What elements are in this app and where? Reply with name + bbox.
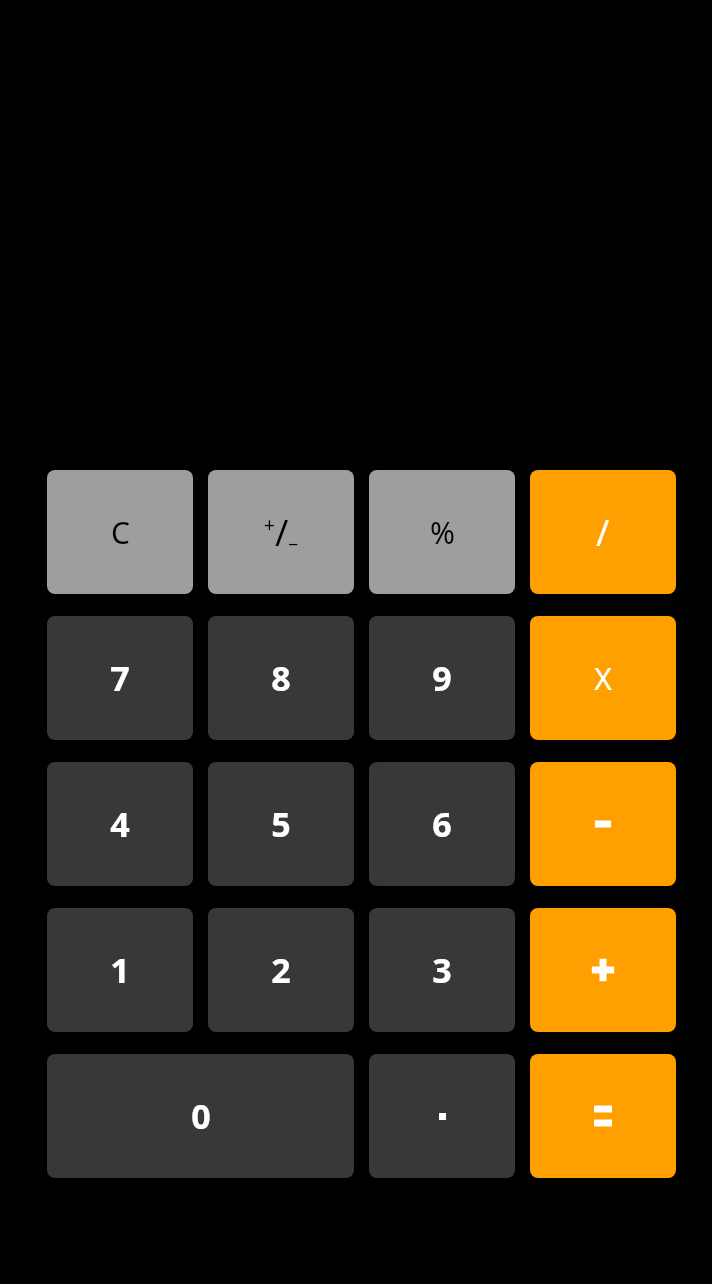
staticText: 3	[432, 947, 452, 993]
staticText: 9	[432, 655, 452, 701]
button[interactable]: %	[369, 470, 515, 594]
button[interactable]: 9	[369, 616, 515, 740]
button[interactable]: C	[47, 470, 193, 594]
staticText: 4	[110, 801, 130, 847]
staticText: /	[596, 508, 610, 557]
button[interactable]: 7	[47, 616, 193, 740]
button[interactable]: 5	[208, 762, 354, 886]
staticText: %	[430, 512, 455, 553]
button[interactable]: 4	[47, 762, 193, 886]
staticText: 7	[110, 655, 130, 701]
staticText: 6	[432, 801, 452, 847]
staticText: 0	[191, 1093, 211, 1139]
button[interactable]: Divide	[530, 470, 676, 594]
button[interactable]: 3	[369, 908, 515, 1032]
staticText: 5	[271, 801, 291, 847]
staticText: C	[111, 512, 130, 553]
button[interactable]: Multiply	[530, 616, 676, 740]
button[interactable]: Equals	[530, 1054, 676, 1178]
button[interactable]: 2	[208, 908, 354, 1032]
button[interactable]: 0	[47, 1054, 354, 1178]
staticText: /	[275, 508, 289, 557]
button[interactable]: 1	[47, 908, 193, 1032]
button[interactable]: Toggle sign	[208, 470, 354, 594]
staticText: X	[594, 658, 612, 699]
button[interactable]: Add	[530, 908, 676, 1032]
button[interactable]: 8	[208, 616, 354, 740]
staticText: 2	[271, 947, 291, 993]
staticText: 8	[271, 655, 291, 701]
button[interactable]: Decimal point	[369, 1054, 515, 1178]
staticText: +	[264, 512, 275, 538]
staticText: _	[289, 522, 298, 548]
staticText: 1	[110, 947, 130, 993]
button[interactable]: 6	[369, 762, 515, 886]
button[interactable]: Subtract	[530, 762, 676, 886]
